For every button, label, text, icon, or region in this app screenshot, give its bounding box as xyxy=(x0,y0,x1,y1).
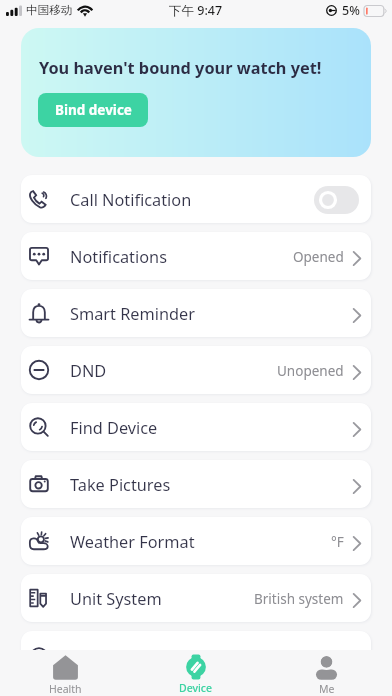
staticText: Call Notification xyxy=(70,189,192,211)
staticText: Me xyxy=(319,682,335,696)
button[interactable]: Take Pictures xyxy=(21,460,371,508)
button[interactable]: Device xyxy=(130,650,261,696)
staticText: DND xyxy=(70,360,107,382)
button[interactable]: Find Device xyxy=(21,403,371,451)
staticText: Device xyxy=(179,681,213,695)
button[interactable]: Notifications xyxy=(21,232,371,280)
button[interactable]: You haven't bound your watch yet! xyxy=(21,28,371,157)
button[interactable]: Weather Format xyxy=(21,517,371,565)
staticText: Opened xyxy=(293,248,344,266)
other: Call notification toggle xyxy=(314,186,359,214)
staticText: Health xyxy=(49,682,82,696)
staticText: 5% xyxy=(342,2,360,19)
button[interactable]: Unit System xyxy=(21,574,371,622)
staticText: Weather Format xyxy=(70,531,195,553)
button[interactable]: DND xyxy=(21,346,371,394)
staticText: Find Device xyxy=(70,417,158,439)
button[interactable]: Bind device xyxy=(38,93,148,127)
staticText: Take Pictures xyxy=(70,474,171,496)
other: Health xyxy=(52,654,79,681)
button[interactable]: Health xyxy=(0,650,130,696)
staticText: Notifications xyxy=(70,246,167,268)
other: Me xyxy=(313,654,340,681)
button[interactable]: Call Notification xyxy=(21,175,371,223)
staticText: Bind device xyxy=(55,101,132,119)
staticText: Alarm xyxy=(70,645,116,667)
other: Device xyxy=(183,654,209,680)
staticText: 下午 9:47 xyxy=(169,2,223,19)
staticText: Unit System xyxy=(70,588,162,610)
staticText: You haven't bound your watch yet! xyxy=(39,57,322,79)
button[interactable]: Smart Reminder xyxy=(21,289,371,337)
staticText: British system xyxy=(254,590,344,608)
button[interactable]: Alarm xyxy=(21,631,371,679)
button[interactable]: Me xyxy=(261,650,392,696)
staticText: °F xyxy=(331,533,344,551)
staticText: Unopened xyxy=(277,362,344,380)
staticText: 中国移动 xyxy=(26,3,73,18)
staticText: Smart Reminder xyxy=(70,303,195,325)
